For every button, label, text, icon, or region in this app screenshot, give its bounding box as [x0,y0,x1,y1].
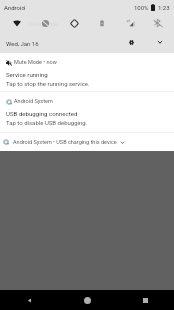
staticText: Mute Mode [28,20,59,27]
staticText: Android System [14,98,53,104]
staticText: Service running [6,71,48,78]
button[interactable]: Settings [125,36,137,48]
button[interactable]: Back [0,290,58,310]
button[interactable]: Mobile data [116,17,144,29]
staticText: Tap to disable USB debugging. [6,119,88,126]
button[interactable]: Expand quick settings [154,36,166,48]
button[interactable]: Wi-Fi [2,17,31,29]
button[interactable]: Android System [0,92,174,132]
staticText: USB debugging connected [6,110,78,117]
button[interactable]: Mute mode [31,17,60,29]
staticText: 1:23 [158,4,170,11]
staticText: 100% [134,4,149,11]
staticText: Tap to stop the running service. [6,80,90,87]
button[interactable]: Auto rotate [60,17,88,29]
staticText: Android [4,4,25,11]
button[interactable]: Battery saver [88,17,116,29]
button[interactable]: Recent apps [116,290,174,310]
staticText: Android System • USB charging this devic… [13,139,117,145]
staticText: Wed, Jan 16 [6,40,39,47]
button[interactable]: Android System • USB charging this devic… [0,133,174,151]
button[interactable]: Mute Mode • now [0,53,174,91]
staticText: Mute Mode • now [14,59,57,65]
button[interactable]: Bluetooth [144,17,172,29]
button[interactable]: Home [58,290,116,310]
